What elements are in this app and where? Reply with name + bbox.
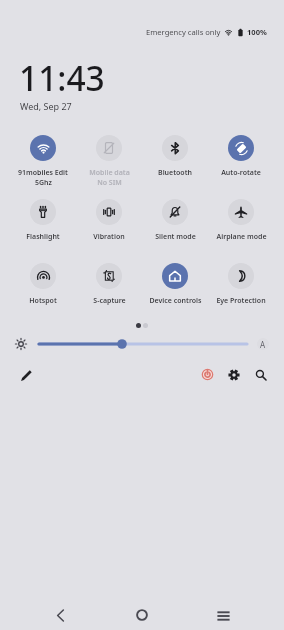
button[interactable]: Eye Protection	[208, 263, 274, 306]
button[interactable]: Edit	[20, 369, 33, 382]
staticText: Mobile data	[89, 168, 130, 178]
button[interactable]: Airplane mode	[208, 199, 274, 242]
button[interactable]: Search	[255, 369, 267, 381]
button[interactable]: S-capture	[76, 263, 142, 306]
button[interactable]: Hotspot	[10, 263, 76, 306]
staticText: Bluetooth	[158, 168, 192, 178]
button[interactable]: Recents	[217, 611, 230, 624]
button[interactable]: Vibration	[76, 199, 142, 242]
button[interactable]: Power	[201, 368, 214, 381]
button[interactable]: 91mobiles Edit	[10, 135, 76, 188]
button[interactable]: Device controls	[142, 263, 208, 306]
staticText: 100%	[247, 27, 267, 37]
staticText: Eye Protection	[216, 296, 266, 306]
button[interactable]: Back	[54, 609, 67, 622]
button[interactable]: Settings	[228, 369, 240, 381]
staticText: 5Ghz	[35, 178, 52, 188]
button[interactable]: Silent mode	[142, 199, 208, 242]
button[interactable]: Auto-rotate	[208, 135, 274, 178]
staticText: Silent mode	[155, 232, 196, 242]
staticText: Auto-rotate	[221, 168, 261, 178]
staticText: Wed, Sep 27	[20, 100, 72, 112]
staticText: Device controls	[149, 296, 202, 306]
staticText: Vibration	[93, 232, 125, 242]
staticText: Hotspot	[29, 296, 57, 306]
staticText: 91mobiles Edit	[18, 168, 68, 178]
staticText: S-capture	[93, 296, 126, 306]
staticText: Emergency calls only	[146, 27, 221, 37]
button[interactable]: Flashlight	[10, 199, 76, 242]
other: Brightness	[14, 337, 28, 351]
staticText: Airplane mode	[216, 232, 267, 242]
button[interactable]: Home	[136, 609, 148, 621]
staticText: Flashlight	[26, 232, 60, 242]
button[interactable]: A	[257, 338, 269, 350]
staticText: A	[260, 339, 266, 350]
button[interactable]: Mobile data	[76, 135, 142, 188]
staticText: No SIM	[97, 178, 122, 188]
button[interactable]: Bluetooth	[142, 135, 208, 178]
staticText: 11:43	[19, 55, 105, 101]
button[interactable]	[0, 338, 284, 350]
